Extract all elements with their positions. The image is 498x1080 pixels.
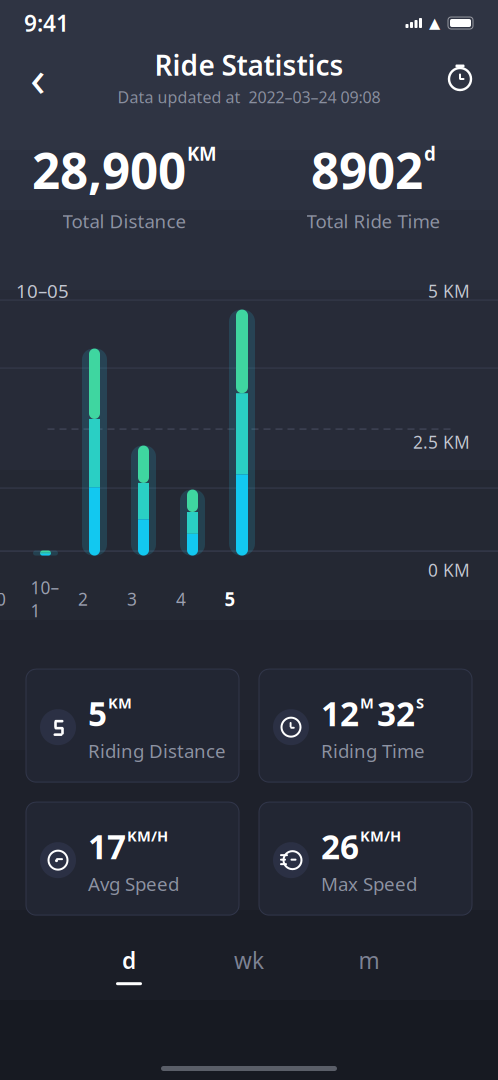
staticText: Total Ride Time <box>306 208 440 233</box>
staticText: KM <box>187 141 217 166</box>
staticText: 5 <box>88 691 107 735</box>
staticText: Total Distance <box>62 208 186 233</box>
button[interactable]: 17 <box>26 802 239 915</box>
staticText: KM/H <box>360 826 401 846</box>
staticText: KM <box>108 693 132 713</box>
staticText: Max Speed <box>321 871 417 896</box>
staticText: KM/H <box>127 826 168 846</box>
staticText: ‹ <box>30 43 46 111</box>
staticText: 3 <box>127 588 137 611</box>
button[interactable]: 26 <box>259 802 472 915</box>
staticText: 2.5 KM <box>413 431 470 454</box>
staticText: Ride Statistics <box>154 46 343 83</box>
button[interactable]: 12 <box>259 669 472 782</box>
staticText: m <box>358 945 379 975</box>
staticText: Data updated at 2022–03–24 09:08 <box>117 86 380 108</box>
staticText: 10–05 <box>16 278 69 303</box>
staticText: 0 KM <box>428 559 470 582</box>
staticText: 12 <box>321 691 359 735</box>
staticText: 8902 <box>311 137 423 202</box>
staticText: wk <box>234 945 264 975</box>
button[interactable]: d <box>69 943 189 987</box>
staticText: 17 <box>88 824 126 868</box>
staticText: 9:41 <box>24 8 69 38</box>
button[interactable]: Timer <box>438 55 482 99</box>
staticText: Riding Distance <box>88 738 226 763</box>
staticText: 10–1 <box>30 576 59 622</box>
button[interactable]: Back <box>16 55 60 99</box>
staticText: 5 KM <box>428 280 470 303</box>
staticText: S <box>416 693 424 713</box>
staticText: 32 <box>377 691 415 735</box>
staticText: 0 <box>0 588 6 611</box>
button[interactable]: m <box>309 943 429 987</box>
staticText: ▲ <box>429 15 440 31</box>
staticText: 5 <box>224 587 235 611</box>
staticText: d <box>122 945 136 975</box>
staticText: 4 <box>176 588 186 611</box>
staticText: 2 <box>78 588 88 611</box>
button[interactable]: wk <box>189 943 309 987</box>
staticText: Avg Speed <box>88 871 179 896</box>
staticText: M <box>360 693 374 713</box>
staticText: 28,900 <box>32 137 186 202</box>
staticText: 26 <box>321 824 359 868</box>
button[interactable]: 5 <box>26 669 239 782</box>
staticText: Riding Time <box>321 738 425 763</box>
staticText: d <box>424 141 436 166</box>
